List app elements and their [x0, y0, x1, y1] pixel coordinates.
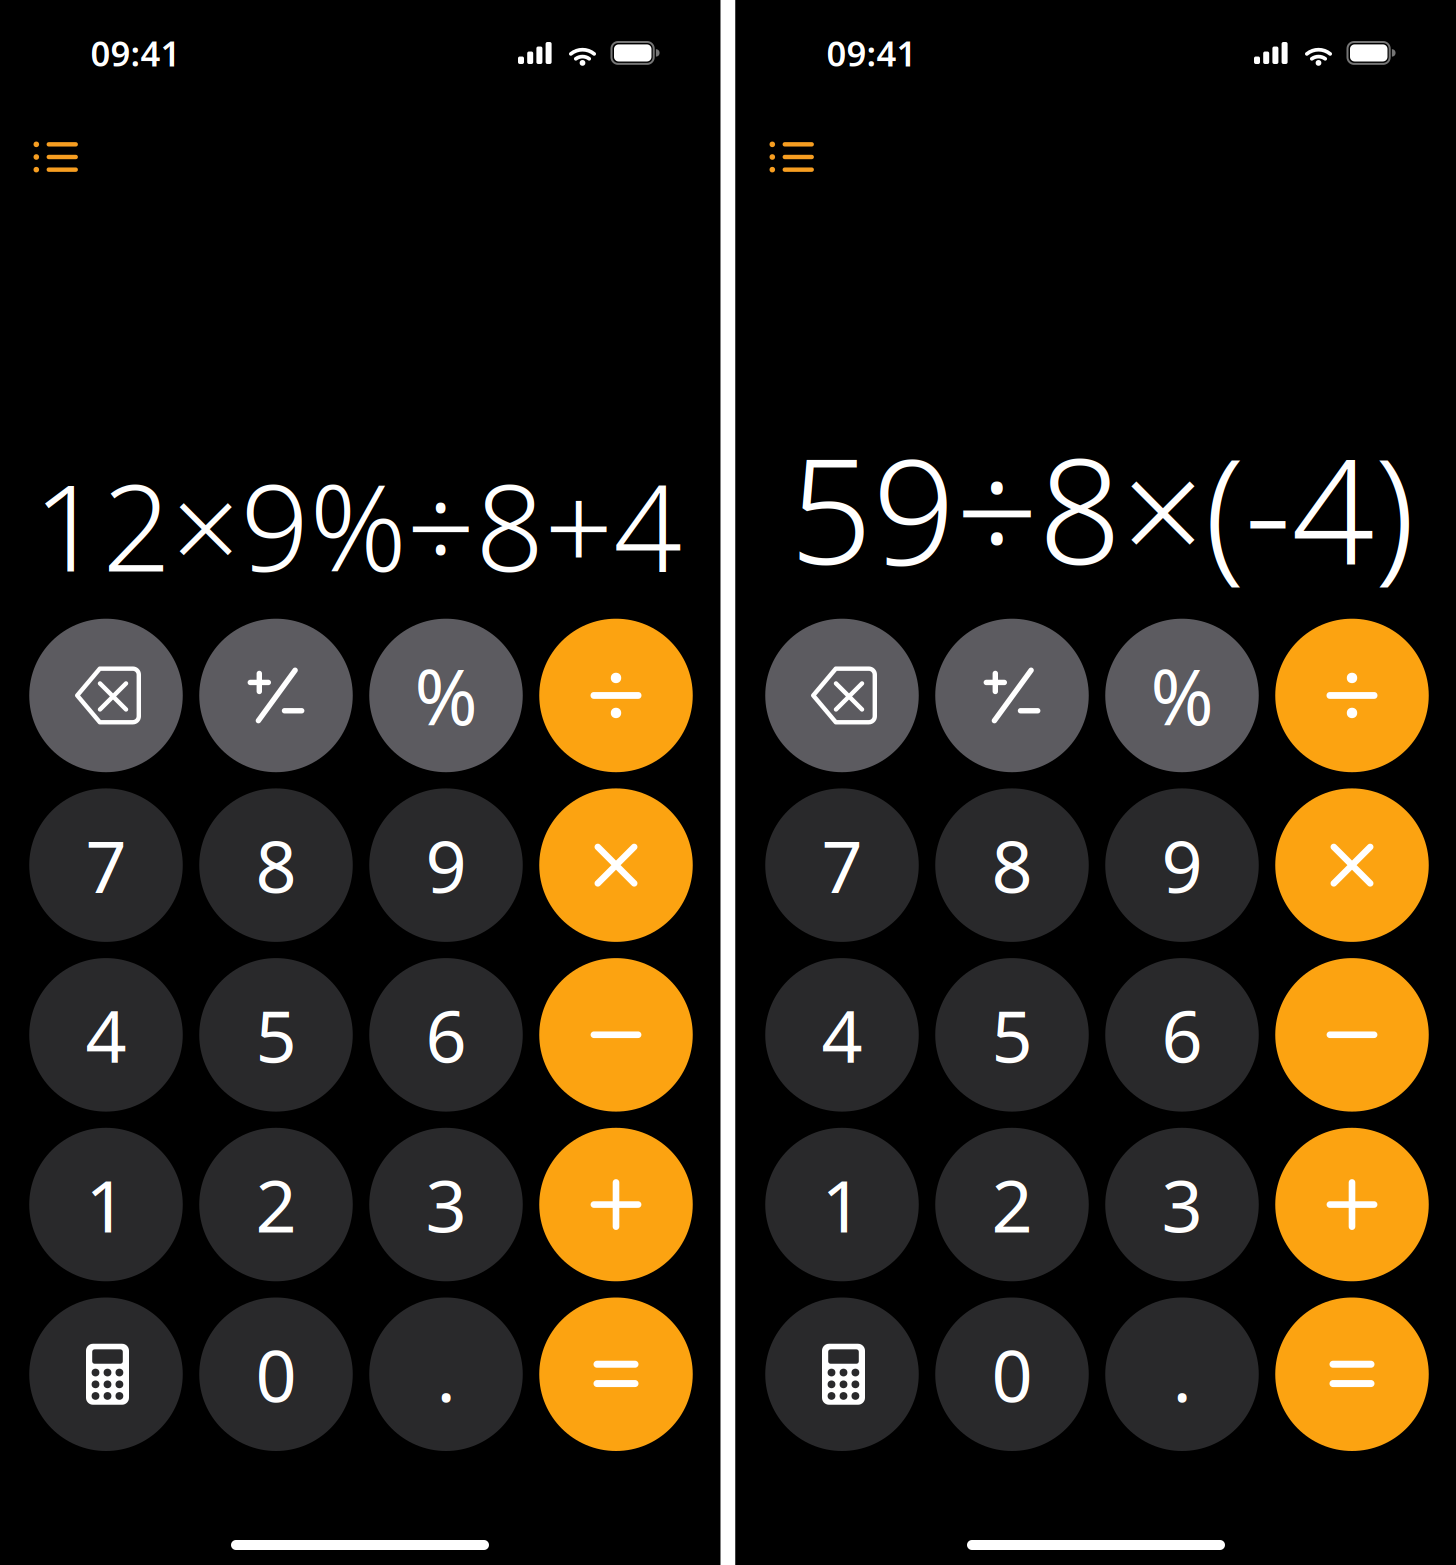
staticText: 59÷8×(-4) — [789, 412, 1414, 605]
button[interactable]: 7 — [765, 788, 919, 942]
button[interactable]: Calculator mode — [29, 1297, 183, 1451]
staticText: 8 — [255, 817, 296, 913]
button[interactable]: 2 — [935, 1128, 1089, 1281]
staticText: 0 — [255, 1326, 296, 1422]
button[interactable]: Delete — [765, 619, 919, 772]
staticText: 4 — [85, 987, 126, 1083]
staticText: 4 — [821, 987, 862, 1083]
button[interactable]: 1 — [765, 1128, 919, 1281]
staticText: 1 — [85, 1157, 126, 1252]
button[interactable]: Decimal point — [1105, 1297, 1259, 1451]
staticText: 1 — [821, 1157, 862, 1252]
staticText: 8 — [991, 817, 1032, 913]
button[interactable]: Equals — [1275, 1297, 1429, 1451]
button[interactable]: Subtract — [1275, 958, 1429, 1112]
staticText: . — [1172, 1326, 1191, 1422]
staticText: 7 — [85, 817, 126, 913]
staticText: % — [414, 645, 477, 746]
staticText: 2 — [991, 1157, 1032, 1252]
staticText: 0 — [991, 1326, 1032, 1422]
staticText: 09:41 — [826, 30, 916, 76]
button[interactable]: Percent — [369, 619, 523, 772]
staticText: 09:41 — [90, 30, 180, 76]
button[interactable]: Add — [539, 1128, 693, 1281]
button[interactable]: Equals — [539, 1297, 693, 1451]
button[interactable]: 9 — [369, 788, 523, 942]
staticText: 7 — [821, 817, 862, 913]
button[interactable]: 0 — [935, 1297, 1089, 1451]
button[interactable]: 0 — [199, 1297, 353, 1451]
button[interactable]: 6 — [1105, 958, 1259, 1112]
staticText: 9 — [425, 817, 466, 913]
button[interactable]: Multiply — [539, 788, 693, 942]
button[interactable]: Delete — [29, 619, 183, 772]
button[interactable]: 9 — [1105, 788, 1259, 942]
button[interactable]: Multiply — [1275, 788, 1429, 942]
button[interactable]: 4 — [765, 958, 919, 1112]
staticText: 5 — [991, 987, 1032, 1083]
button[interactable]: 4 — [29, 958, 183, 1112]
button[interactable]: Calculator mode — [765, 1297, 919, 1451]
button[interactable]: Toggle sign — [199, 619, 353, 772]
staticText: 9 — [1161, 817, 1202, 913]
button[interactable]: 5 — [199, 958, 353, 1112]
button[interactable]: 2 — [199, 1128, 353, 1281]
button[interactable]: Toggle sign — [935, 619, 1089, 772]
staticText: . — [436, 1326, 455, 1422]
button[interactable]: Subtract — [539, 958, 693, 1112]
button[interactable]: 8 — [935, 788, 1089, 942]
button[interactable]: 1 — [29, 1128, 183, 1281]
button[interactable]: History — [0, 123, 98, 190]
button[interactable]: Divide — [539, 619, 693, 772]
staticText: % — [1150, 645, 1213, 746]
button[interactable]: 3 — [369, 1128, 523, 1281]
button[interactable]: 6 — [369, 958, 523, 1112]
staticText: 6 — [1161, 987, 1202, 1083]
staticText: 3 — [1161, 1157, 1202, 1252]
button[interactable]: Percent — [1105, 619, 1259, 772]
button[interactable]: 7 — [29, 788, 183, 942]
button[interactable]: 8 — [199, 788, 353, 942]
staticText: 3 — [425, 1157, 466, 1252]
button[interactable]: Decimal point — [369, 1297, 523, 1451]
staticText: 2 — [255, 1157, 296, 1252]
staticText: 5 — [255, 987, 296, 1083]
button[interactable]: 3 — [1105, 1128, 1259, 1281]
staticText: 6 — [425, 987, 466, 1083]
button[interactable]: History — [735, 123, 834, 190]
button[interactable]: Add — [1275, 1128, 1429, 1281]
staticText: 12×9%÷8+4 — [33, 445, 682, 605]
button[interactable]: 5 — [935, 958, 1089, 1112]
button[interactable]: Divide — [1275, 619, 1429, 772]
